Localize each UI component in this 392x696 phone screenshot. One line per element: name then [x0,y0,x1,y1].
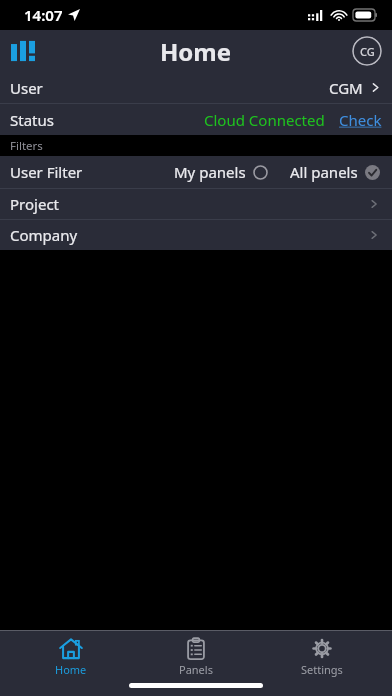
other: App logo [11,39,35,63]
button[interactable]: User [0,72,392,103]
staticText: Home [160,35,232,68]
button[interactable]: All panels [290,162,380,182]
staticText: All panels [290,162,358,182]
staticText: User [10,78,43,98]
staticText: Project [10,194,59,214]
staticText: User Filter [10,162,83,182]
staticText: 14:07 [24,5,63,25]
staticText: CG [360,44,375,59]
button[interactable]: Company [0,220,392,250]
staticText: Filters [10,138,43,154]
button[interactable]: Settings [267,635,377,679]
staticText: Cloud Connected [204,110,325,130]
staticText: CGM [329,78,363,98]
staticText: Status [10,110,54,130]
button[interactable]: Project [0,189,392,219]
button[interactable]: Check [339,110,382,130]
staticText: Settings [301,662,343,677]
button[interactable]: Panels [141,635,251,679]
button[interactable]: My panels [174,162,268,182]
staticText: My panels [174,162,246,182]
staticText: Panels [179,662,213,677]
button[interactable]: Account CG [352,36,382,66]
button[interactable]: Home [16,635,126,679]
staticText: Company [10,225,78,245]
staticText: Check [339,110,382,130]
staticText: Home [55,662,87,677]
